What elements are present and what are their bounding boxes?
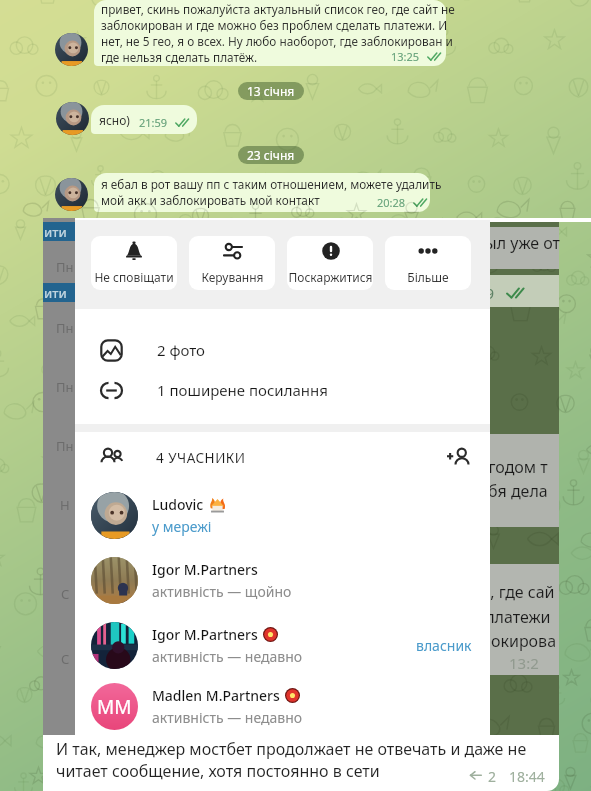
staticText: 23 січня: [247, 147, 295, 163]
staticText: Madlen M.Partners: [152, 686, 280, 705]
button[interactable]: MM: [75, 678, 490, 735]
staticText: 2: [488, 767, 497, 786]
staticText: И так, менеджер мостбет продолжает не от…: [56, 738, 527, 760]
staticText: MM: [97, 694, 132, 720]
staticText: заблокирован и где можно без проблем сде…: [101, 17, 448, 33]
staticText: тебя дела: [472, 480, 548, 502]
button[interactable]: Більше: [385, 236, 471, 290]
button[interactable]: 4 УЧАСНИКИ: [75, 432, 490, 483]
staticText: 1 поширене посилання: [157, 380, 328, 400]
staticText: власник: [416, 636, 472, 655]
staticText: С: [61, 585, 70, 603]
staticText: 2 фото: [157, 340, 206, 360]
button[interactable]: 2 фото: [75, 330, 490, 370]
staticText: 18:44: [509, 767, 545, 786]
staticText: С: [61, 650, 70, 668]
staticText: Пн: [56, 258, 74, 276]
staticText: Пн: [56, 378, 74, 396]
staticText: Більше: [407, 269, 449, 285]
staticText: Не сповіщати: [94, 269, 174, 285]
staticText: Igor M.Partners: [152, 560, 258, 579]
staticText: 20:28: [377, 195, 406, 210]
staticText: у мережі: [152, 517, 212, 536]
staticText: 4 УЧАСНИКИ: [156, 449, 246, 467]
staticText: блокирова: [472, 630, 557, 652]
staticText: ео, где сай: [472, 581, 555, 603]
staticText: 21:59: [139, 115, 168, 130]
button[interactable]: Додати учасника: [444, 444, 472, 472]
staticText: где нельзя сделать платёж.: [101, 49, 258, 65]
staticText: м годом т: [472, 456, 548, 478]
staticText: 49: [477, 283, 495, 303]
staticText: активність — недавно: [152, 708, 303, 727]
staticText: 13 січня: [247, 83, 295, 99]
staticText: был уже от: [475, 232, 560, 254]
staticText: Ludovic: [152, 495, 204, 514]
button[interactable]: 1 поширене посилання: [75, 370, 490, 410]
button[interactable]: Ludovic: [75, 483, 490, 548]
staticText: нет, не 5 гео, я о всех. Ну любо наоборо…: [101, 33, 453, 49]
staticText: ити: [44, 223, 67, 241]
staticText: Керування: [201, 269, 264, 285]
staticText: Поскаржитися: [288, 269, 373, 285]
staticText: Н: [60, 496, 70, 514]
button[interactable]: Igor M.Partners: [75, 613, 490, 678]
staticText: я ебал в рот вашу пп с таким отношением,…: [101, 176, 442, 192]
staticText: привет, скинь пожалуйста актуальный спис…: [101, 1, 455, 17]
staticText: Igor M.Partners: [152, 625, 258, 644]
staticText: активність — щойно: [152, 582, 292, 601]
staticText: ити: [44, 284, 67, 302]
staticText: читает сообщение, хотя постоянно в сети: [56, 760, 380, 782]
button[interactable]: Igor M.Partners: [75, 548, 490, 613]
button[interactable]: Поскаржитися: [287, 236, 373, 290]
staticText: активність — недавно: [152, 647, 303, 666]
staticText: Пн: [56, 437, 74, 455]
staticText: 13:25: [391, 49, 420, 64]
staticText: 13:2: [509, 653, 539, 673]
button[interactable]: Не сповіщати: [91, 236, 177, 290]
staticText: ясно): [99, 112, 130, 128]
staticText: Пн: [56, 319, 74, 337]
staticText: ь платежи: [472, 606, 551, 628]
button[interactable]: Керування: [189, 236, 275, 290]
staticText: мой акк и заблокировать мой контакт: [101, 192, 320, 208]
